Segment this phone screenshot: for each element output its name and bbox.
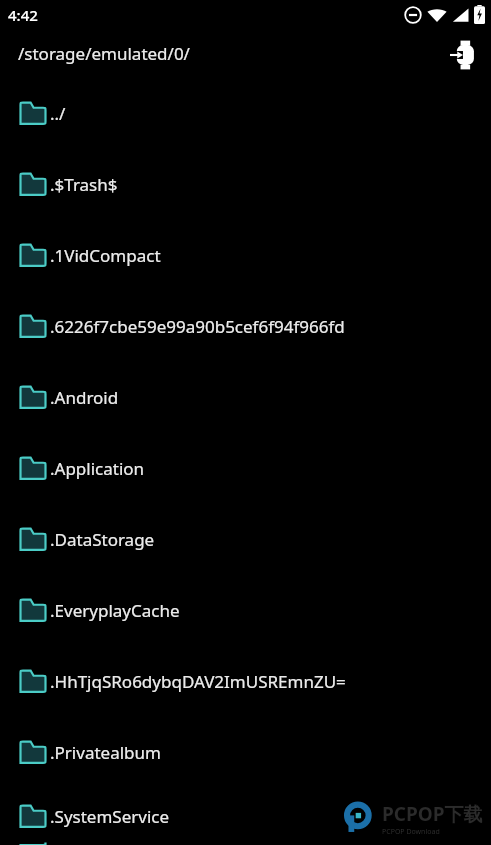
button[interactable]: .HhTjqSRo6dybqDAV2ImUSREmnZU= — [0, 646, 491, 717]
staticText: ../ — [50, 102, 66, 125]
button[interactable]: .1VidCompact — [0, 220, 491, 291]
button[interactable]: .Android — [0, 362, 491, 433]
button[interactable]: .EveryplayCache — [0, 575, 491, 646]
staticText: .EveryplayCache — [50, 599, 180, 622]
staticText: .$Trash$ — [50, 173, 118, 196]
button[interactable]: .DataStorage — [0, 504, 491, 575]
staticText: .Privatealbum — [50, 741, 161, 764]
button[interactable]: ../ — [0, 78, 491, 149]
staticText: .Application — [50, 457, 145, 480]
staticText: .HhTjqSRo6dybqDAV2ImUSREmnZU= — [50, 670, 346, 693]
staticText: .6226f7cbe59e99a90b5cef6f94f966fd — [50, 315, 345, 338]
staticText: .DataStorage — [50, 528, 155, 551]
staticText: .1VidCompact — [50, 244, 161, 267]
staticText: .Android — [50, 386, 119, 409]
staticText: /storage/emulated/0/ — [18, 42, 190, 65]
button[interactable]: .Application — [0, 433, 491, 504]
staticText: .SystemService — [50, 805, 170, 828]
button[interactable]: .6226f7cbe59e99a90b5cef6f94f966fd — [0, 291, 491, 362]
staticText: PCPOP下载 — [382, 801, 483, 827]
button[interactable]: .$Trash$ — [0, 149, 491, 220]
button[interactable]: Send to watch — [443, 35, 483, 75]
button[interactable]: .SystemService — [0, 788, 491, 845]
button[interactable]: .Privatealbum — [0, 717, 491, 788]
staticText: 4:42 — [8, 5, 38, 25]
staticText: PCPOP Download — [382, 827, 440, 837]
